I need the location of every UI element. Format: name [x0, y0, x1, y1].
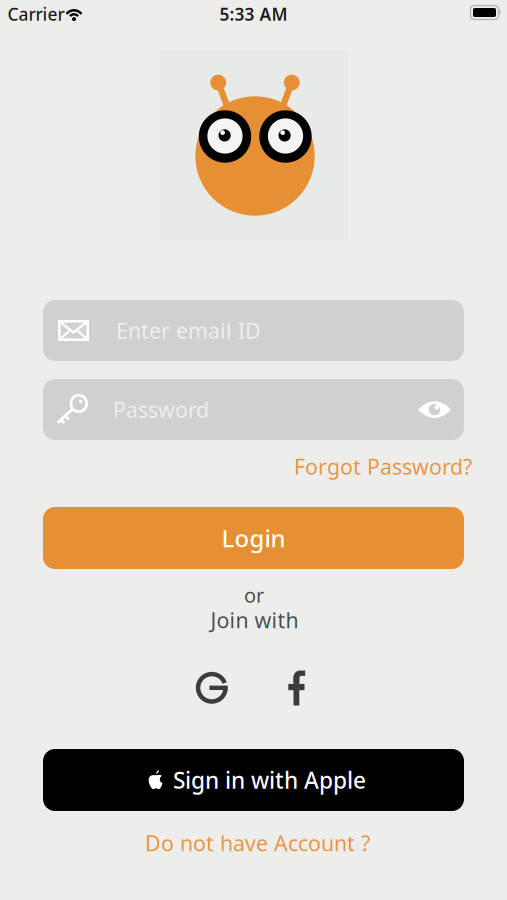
button[interactable]: Sign in with Facebook	[288, 670, 305, 705]
staticText: Carrier	[7, 2, 64, 25]
staticText: Password	[113, 395, 209, 424]
button[interactable]: Do not have Account ?	[127, 827, 387, 859]
staticText: Join with	[210, 606, 298, 634]
button[interactable]: Sign in with Google	[195, 671, 229, 705]
button[interactable]: Login	[43, 507, 464, 569]
staticText: Forgot Password?	[294, 452, 472, 481]
staticText: 5:33 AM	[219, 2, 287, 25]
staticText: Login	[221, 522, 285, 554]
staticText: or	[244, 582, 264, 608]
button[interactable]: Forgot Password?	[282, 451, 472, 481]
button[interactable]: Enter email ID	[43, 300, 464, 361]
staticText: Enter email ID	[116, 316, 261, 345]
button[interactable]: Password	[43, 379, 464, 440]
staticText: Do not have Account ?	[145, 829, 370, 857]
staticText: Sign in with Apple	[173, 765, 366, 795]
button[interactable]: Sign in with Apple	[43, 749, 464, 811]
